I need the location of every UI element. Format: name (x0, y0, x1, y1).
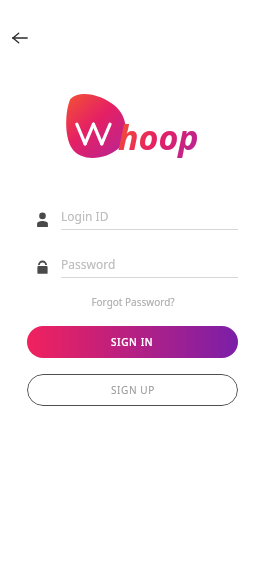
staticText: SIGN UP (111, 383, 155, 397)
staticText: hoop (118, 114, 199, 160)
staticText: Forgot Password? (91, 295, 175, 309)
button[interactable]: Login ID (27, 205, 238, 233)
button[interactable]: Password (27, 253, 238, 281)
button[interactable]: SIGN UP (27, 374, 238, 406)
button[interactable]: Forgot Password? (87, 293, 179, 311)
staticText: SIGN IN (111, 335, 154, 349)
staticText: Password (61, 256, 116, 272)
button[interactable]: Back (6, 24, 34, 52)
staticText: Login ID (61, 208, 109, 224)
button[interactable]: SIGN IN (27, 326, 238, 358)
